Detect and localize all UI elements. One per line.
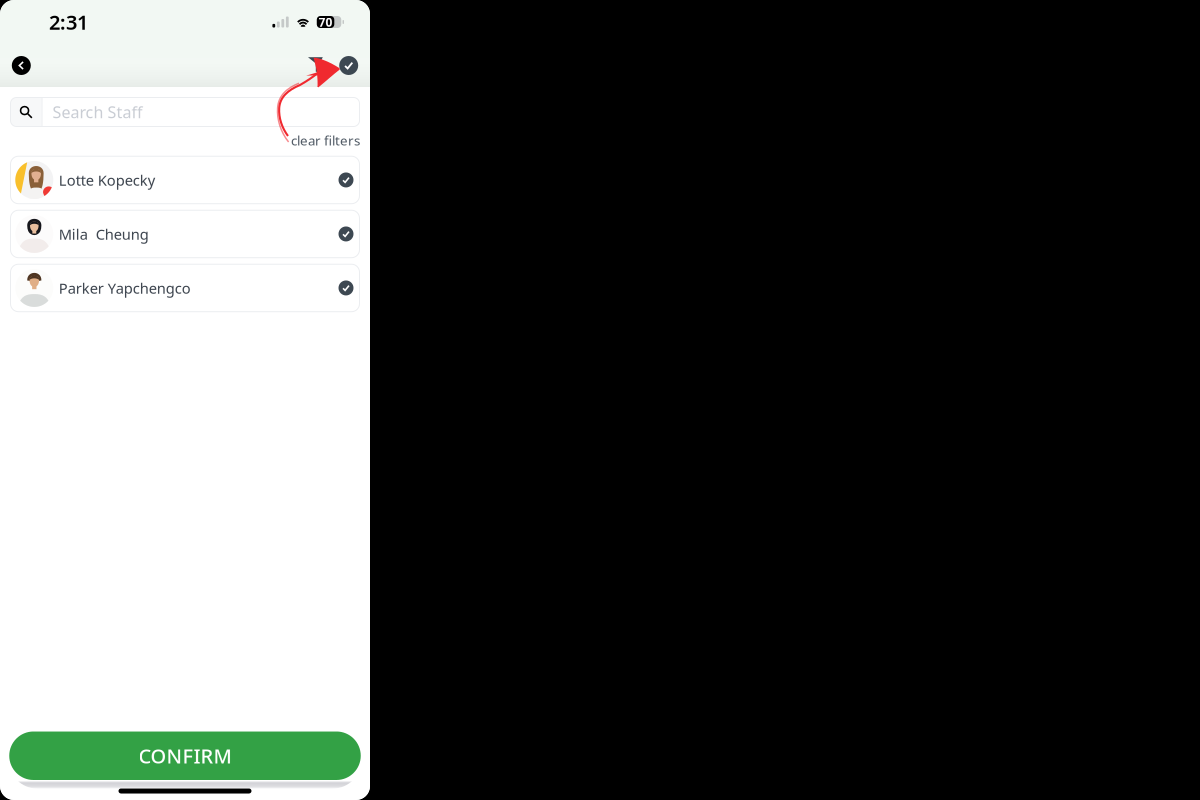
button[interactable]: Confirm selection [339, 56, 358, 75]
button[interactable]: clear filters [291, 131, 360, 149]
button[interactable]: CONFIRM [6, 731, 363, 788]
button[interactable]: Mila Cheung [10, 210, 359, 258]
staticText: CONFIRM [138, 742, 231, 769]
staticText: 70 [319, 14, 333, 30]
staticText: 2:31 [49, 9, 88, 35]
staticText: Parker Yapchengco [59, 278, 191, 298]
staticText: Lotte Kopecky [59, 170, 155, 190]
staticText: Mila Cheung [59, 224, 149, 244]
button[interactable]: Parker Yapchengco [10, 264, 359, 312]
button[interactable]: Back [12, 56, 31, 75]
staticText: Search Staff [52, 101, 142, 123]
button[interactable]: Lotte Kopecky [10, 156, 359, 204]
staticText: clear filters [291, 131, 360, 149]
